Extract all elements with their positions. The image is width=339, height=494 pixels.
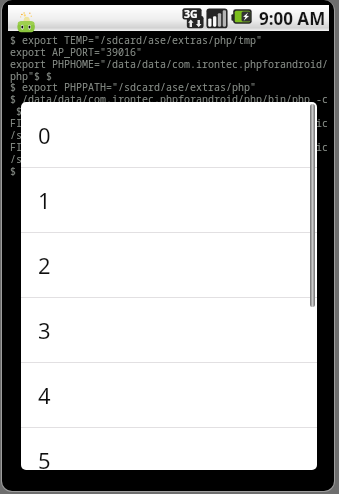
staticText: $ bbox=[10, 104, 22, 118]
staticText: FILE=/sdcard/ase/scripts/ap.php AP_HANDS… bbox=[10, 116, 328, 130]
other: Scripting notification bbox=[14, 11, 38, 33]
staticText: export AP_PORT="39016" bbox=[10, 45, 142, 59]
staticText: 3 bbox=[38, 315, 51, 345]
staticText: FILE=/sdcard/ase/scripts/ap.php AP_HANDS… bbox=[10, 140, 328, 154]
button[interactable]: 1 bbox=[21, 167, 317, 232]
button[interactable]: 5 bbox=[21, 427, 317, 470]
staticText: 5 bbox=[38, 445, 51, 470]
staticText: $ export TEMP="/sdcard/ase/extras/php/tm… bbox=[10, 33, 262, 47]
button[interactable]: 4 bbox=[21, 362, 317, 427]
button[interactable]: 2 bbox=[21, 232, 317, 297]
button[interactable]: 0 bbox=[21, 102, 317, 167]
staticText: 0 bbox=[38, 120, 51, 150]
staticText: 4 bbox=[38, 380, 51, 410]
staticText: $ bbox=[10, 164, 16, 178]
staticText: $ export PHPPATH="/sdcard/ase/extras/php… bbox=[10, 80, 256, 94]
staticText: $ /data/data/com.irontec.phpforandroid/p… bbox=[10, 92, 328, 106]
staticText: /sdcard/ase/scripts/ap.php bbox=[10, 152, 166, 166]
staticText: export PHPHOME="/data/data/com.irontec.p… bbox=[10, 57, 328, 71]
staticText: 3G bbox=[184, 7, 198, 21]
button[interactable]: 3 bbox=[21, 297, 317, 362]
staticText: php"$ $ bbox=[10, 69, 52, 83]
staticText: 1 bbox=[38, 185, 51, 215]
staticText: /sdcard/ase/scripts/ap.php bbox=[10, 128, 166, 142]
staticText: 2 bbox=[38, 250, 51, 280]
staticText: 9:00 AM bbox=[259, 7, 326, 30]
